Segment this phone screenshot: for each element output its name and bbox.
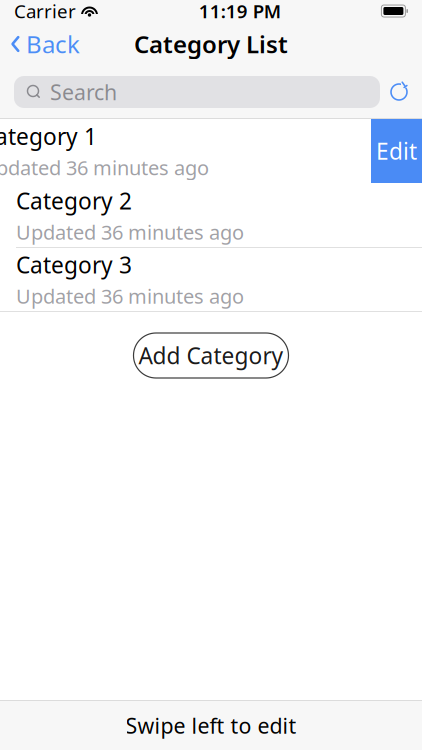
staticText: Updated 36 minutes ago — [0, 154, 209, 181]
staticText: 11:19 PM — [199, 0, 281, 23]
button[interactable]: Back — [0, 22, 80, 66]
button[interactable]: Category 3 — [0, 248, 422, 311]
staticText: Category List — [134, 28, 288, 60]
staticText: Category 3 — [16, 250, 132, 280]
button[interactable]: Category 2 — [0, 184, 422, 247]
staticText: Add Category — [138, 340, 283, 370]
staticText: Search — [50, 78, 117, 106]
button[interactable]: Category 1 — [0, 119, 332, 183]
staticText: Category 2 — [16, 186, 132, 216]
staticText: Back — [26, 28, 80, 60]
staticText: Category 1 — [0, 121, 97, 151]
staticText: Swipe left to edit — [125, 711, 296, 740]
button[interactable]: Edit — [371, 119, 422, 183]
button[interactable]: Refresh — [380, 74, 418, 110]
staticText: Updated 36 minutes ago — [16, 219, 244, 245]
button[interactable]: Add Category — [133, 333, 288, 378]
staticText: Edit — [376, 136, 417, 166]
staticText: Carrier — [14, 0, 76, 23]
staticText: Updated 36 minutes ago — [16, 283, 244, 309]
